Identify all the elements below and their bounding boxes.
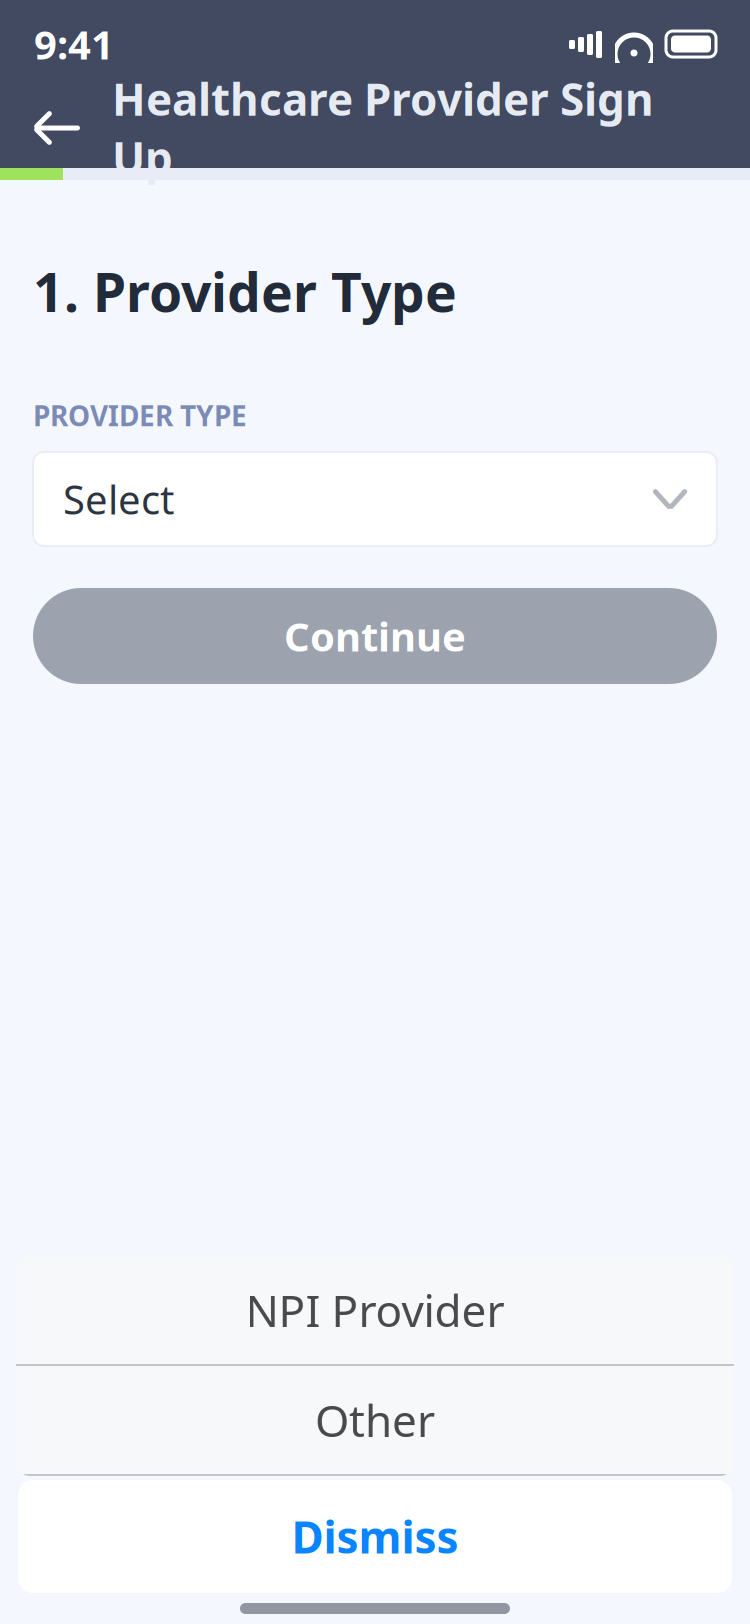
- staticText: Dismiss: [291, 1507, 458, 1566]
- staticText: Continue: [284, 609, 466, 662]
- button[interactable]: Back: [22, 92, 94, 164]
- button[interactable]: Continue: [33, 588, 717, 684]
- staticText: PROVIDER TYPE: [33, 397, 247, 434]
- staticText: Select: [63, 472, 174, 525]
- staticText: Other: [315, 1391, 435, 1449]
- staticText: 9:41: [34, 17, 114, 70]
- button[interactable]: Other: [16, 1366, 734, 1474]
- button[interactable]: Select: [33, 452, 717, 546]
- button[interactable]: NPI Provider: [16, 1256, 734, 1364]
- staticText: NPI Provider: [245, 1281, 504, 1339]
- staticText: 1. Provider Type: [33, 256, 457, 327]
- button[interactable]: Dismiss: [18, 1480, 732, 1593]
- staticText: Healthcare Provider Sign Up: [112, 70, 654, 186]
